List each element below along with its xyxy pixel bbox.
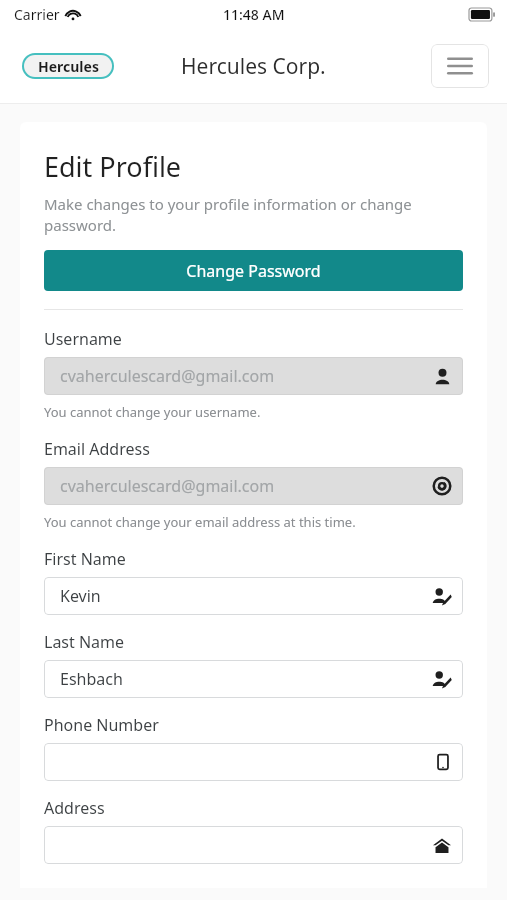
button[interactable]: cvaherculescard@gmail.com: [44, 357, 463, 395]
staticText: Hercules Corp.: [181, 52, 326, 81]
staticText: cvaherculescard@gmail.com: [60, 365, 275, 387]
staticText: Change Password: [186, 260, 321, 282]
button[interactable]: Kevin: [44, 577, 463, 615]
button[interactable]: cvaherculescard@gmail.com: [44, 467, 463, 505]
staticText: Email Address: [44, 438, 150, 460]
button[interactable]: [44, 826, 463, 864]
staticText: Phone Number: [44, 714, 159, 736]
staticText: Edit Profile: [44, 148, 182, 185]
button[interactable]: Hercules logo: [24, 55, 112, 77]
staticText: Kevin: [60, 585, 101, 607]
button[interactable]: [44, 743, 463, 781]
button[interactable]: Menu: [431, 44, 489, 88]
staticText: cvaherculescard@gmail.com: [60, 475, 275, 497]
staticText: Address: [44, 797, 105, 819]
staticText: Carrier: [14, 5, 60, 24]
staticText: Last Name: [44, 631, 125, 653]
staticText: 11:48 AM: [223, 5, 285, 24]
staticText: You cannot change your email address at …: [44, 513, 356, 531]
staticText: Hercules: [38, 57, 99, 76]
staticText: First Name: [44, 548, 126, 570]
staticText: You cannot change your username.: [44, 403, 261, 421]
staticText: Username: [44, 328, 122, 350]
button[interactable]: Change Password: [44, 250, 463, 291]
button[interactable]: Eshbach: [44, 660, 463, 698]
staticText: Make changes to your profile information…: [44, 194, 463, 236]
staticText: Eshbach: [60, 668, 123, 690]
